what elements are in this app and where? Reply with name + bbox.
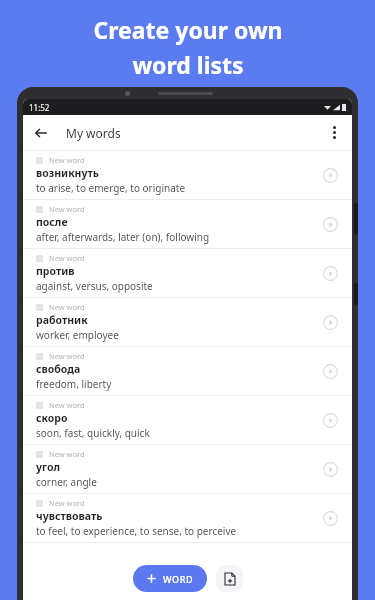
button[interactable]: New word: [23, 347, 352, 395]
button[interactable]: WORD: [133, 565, 207, 592]
button[interactable]: Back: [23, 115, 58, 150]
staticText: against, versus, opposite: [36, 279, 153, 293]
staticText: freedom, liberty: [36, 377, 112, 391]
staticText: New word: [49, 498, 85, 508]
button[interactable]: Play pronunciation: [318, 457, 342, 481]
button[interactable]: Play pronunciation: [318, 163, 342, 187]
staticText: скоро: [36, 411, 68, 425]
staticText: to feel, to experience, to sense, to per…: [36, 524, 237, 538]
staticText: чувствовать: [36, 509, 103, 523]
button[interactable]: More options: [317, 115, 352, 150]
staticText: My words: [66, 125, 121, 141]
staticText: Create your own: [93, 14, 283, 45]
staticText: возникнуть: [36, 166, 100, 180]
staticText: New word: [49, 302, 85, 312]
button[interactable]: Play pronunciation: [318, 261, 342, 285]
button[interactable]: New word: [23, 249, 352, 297]
staticText: after, afterwards, later (on), following: [36, 230, 210, 244]
staticText: worker, employee: [36, 328, 119, 342]
button[interactable]: Play pronunciation: [318, 359, 342, 383]
button[interactable]: New word: [23, 298, 352, 346]
button[interactable]: New word: [23, 494, 352, 542]
button[interactable]: Play pronunciation: [318, 506, 342, 530]
button[interactable]: Import words from file: [216, 565, 243, 592]
button[interactable]: New word: [23, 151, 352, 199]
staticText: New word: [49, 351, 85, 361]
button[interactable]: Play pronunciation: [318, 408, 342, 432]
staticText: после: [36, 215, 68, 229]
staticText: New word: [49, 155, 85, 165]
staticText: работник: [36, 313, 88, 327]
button[interactable]: Play pronunciation: [318, 212, 342, 236]
button[interactable]: New word: [23, 396, 352, 444]
staticText: New word: [49, 253, 85, 263]
staticText: word lists: [132, 49, 244, 80]
staticText: New word: [49, 204, 85, 214]
staticText: угол: [36, 460, 60, 474]
staticText: New word: [49, 449, 85, 459]
staticText: corner, angle: [36, 475, 97, 489]
staticText: свобода: [36, 362, 81, 376]
button[interactable]: New word: [23, 200, 352, 248]
staticText: to arise, to emerge, to originate: [36, 181, 186, 195]
staticText: против: [36, 264, 75, 278]
button[interactable]: Play pronunciation: [318, 310, 342, 334]
staticText: WORD: [163, 573, 194, 585]
staticText: New word: [49, 400, 85, 410]
staticText: 11:52: [29, 102, 50, 113]
staticText: soon, fast, quickly, quick: [36, 426, 150, 440]
button[interactable]: New word: [23, 445, 352, 493]
